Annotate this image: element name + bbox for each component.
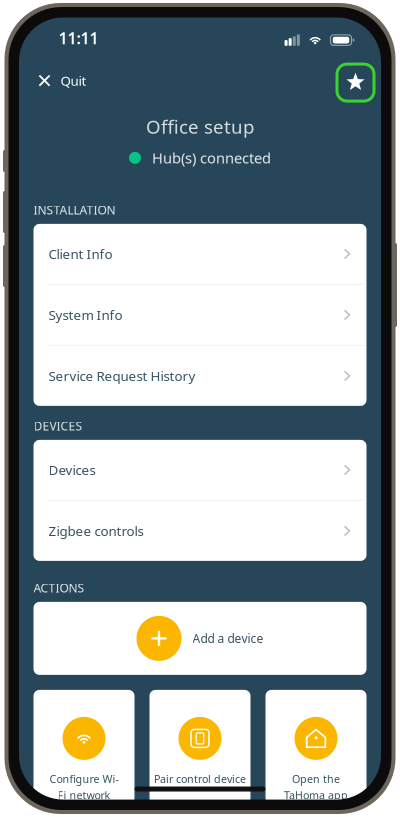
staticText: Office setup: [146, 114, 254, 139]
staticText: Client Info: [48, 245, 112, 263]
button[interactable]: System Info: [33, 285, 366, 345]
staticText: Hub(s) connected: [152, 148, 271, 168]
staticText: Service Request History: [48, 367, 195, 385]
button[interactable]: Pair control device: [149, 690, 250, 804]
staticText: Fi network: [57, 788, 110, 802]
button[interactable]: Zigbee controls: [33, 501, 366, 561]
staticText: Open the: [292, 772, 340, 786]
button[interactable]: Service Request History: [33, 346, 366, 406]
staticText: INSTALLATION: [33, 202, 115, 218]
staticText: Pair control device: [154, 772, 246, 786]
staticText: ACTIONS: [33, 580, 84, 596]
staticText: Zigbee controls: [48, 522, 143, 540]
staticText: System Info: [48, 306, 122, 324]
button[interactable]: Configure Wi-: [33, 690, 134, 804]
staticText: Quit: [60, 72, 86, 89]
button[interactable]: Quit: [18, 59, 100, 99]
button[interactable]: Client Info: [33, 224, 366, 284]
staticText: Devices: [48, 461, 95, 479]
staticText: DEVICES: [33, 418, 82, 434]
button[interactable]: Favourite: [335, 63, 375, 103]
staticText: TaHoma app: [284, 788, 348, 802]
button[interactable]: Add a device: [33, 602, 366, 675]
button[interactable]: Devices: [33, 440, 366, 500]
button[interactable]: Open the: [265, 690, 366, 804]
staticText: Configure Wi-: [49, 772, 118, 786]
staticText: Add a device: [192, 630, 263, 646]
staticText: 11:11: [58, 27, 98, 49]
